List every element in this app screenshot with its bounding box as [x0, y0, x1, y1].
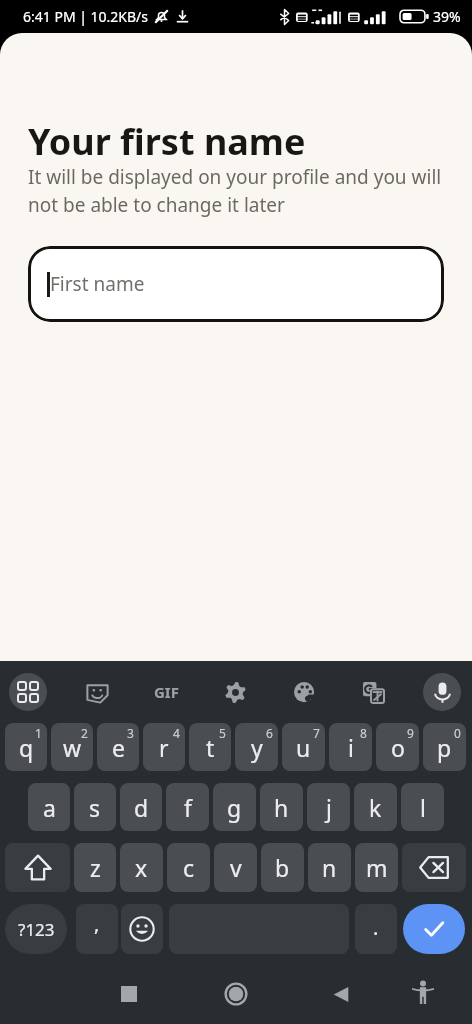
button[interactable]: Back — [318, 971, 364, 1017]
staticText: t — [206, 732, 215, 763]
staticText: u — [296, 732, 311, 763]
button[interactable]: Voice input — [418, 664, 466, 720]
staticText: l — [420, 792, 426, 823]
button[interactable]: w — [51, 723, 93, 771]
staticText: i — [348, 732, 354, 763]
staticText: ?123 — [18, 918, 55, 941]
staticText: 7 — [313, 725, 320, 741]
staticText: r — [159, 732, 169, 763]
button[interactable]: l — [401, 783, 444, 831]
button[interactable]: . — [355, 904, 397, 954]
button[interactable]: ?123 — [5, 904, 67, 954]
staticText: 3 — [127, 725, 134, 741]
button[interactable]: g — [213, 783, 256, 831]
staticText: j — [326, 792, 332, 823]
button[interactable]: d — [120, 783, 162, 831]
button[interactable]: Recent apps — [106, 971, 152, 1017]
staticText: 4 — [173, 725, 180, 741]
staticText: p — [437, 732, 452, 763]
button[interactable]: j — [307, 783, 350, 831]
staticText: h — [274, 792, 289, 823]
staticText: x — [135, 852, 148, 883]
button[interactable]: r — [143, 723, 185, 771]
button[interactable]: k — [354, 783, 397, 831]
staticText: d — [134, 792, 149, 823]
staticText: f — [184, 792, 192, 823]
button[interactable]: First name — [28, 246, 444, 322]
button[interactable]: i — [329, 723, 372, 771]
staticText: o — [391, 732, 405, 763]
button[interactable]: Translate — [349, 664, 397, 720]
staticText: It will be displayed on your profile and… — [28, 164, 444, 218]
button[interactable]: Settings — [211, 664, 259, 720]
staticText: a — [43, 792, 56, 823]
staticText: . — [373, 914, 379, 941]
staticText: y — [251, 732, 263, 763]
staticText: , — [94, 910, 100, 937]
button[interactable]: Keyboard layouts — [4, 664, 52, 720]
staticText: g — [227, 792, 242, 823]
staticText: e — [112, 732, 125, 763]
staticText: 6:41 PM | 10.2KB/s — [23, 7, 149, 26]
button[interactable]: h — [260, 783, 303, 831]
staticText: 0 — [454, 725, 461, 741]
button[interactable]: x — [120, 843, 163, 892]
staticText: q — [19, 732, 34, 763]
staticText: s — [89, 792, 101, 823]
staticText: 9 — [407, 725, 414, 741]
button[interactable]: c — [167, 843, 210, 892]
button[interactable]: v — [214, 843, 257, 892]
button[interactable]: s — [74, 783, 116, 831]
button[interactable]: q — [5, 723, 47, 771]
staticText: z — [90, 852, 101, 883]
button[interactable]: y — [235, 723, 278, 771]
button[interactable]: b — [261, 843, 304, 892]
staticText: First name — [50, 271, 145, 297]
staticText: m — [366, 852, 388, 883]
staticText: v — [230, 852, 242, 883]
button[interactable]: Home — [213, 971, 259, 1017]
staticText: 1 — [35, 725, 42, 741]
button[interactable]: Backspace — [402, 843, 466, 892]
button[interactable]: Themes — [280, 664, 328, 720]
button[interactable]: a — [28, 783, 70, 831]
staticText: GIF — [154, 682, 179, 702]
staticText: 39% — [433, 7, 461, 26]
button[interactable]: m — [355, 843, 398, 892]
staticText: c — [183, 852, 195, 883]
button[interactable]: Shift — [5, 843, 70, 892]
button[interactable]: p — [423, 723, 466, 771]
button[interactable]: u — [282, 723, 325, 771]
button[interactable]: Emoji — [121, 904, 163, 954]
staticText: 8 — [360, 725, 367, 741]
button[interactable]: t — [189, 723, 231, 771]
button[interactable]: e — [97, 723, 139, 771]
button[interactable]: , — [76, 904, 118, 954]
button[interactable]: o — [376, 723, 419, 771]
staticText: w — [63, 732, 82, 763]
staticText: 2 — [81, 725, 88, 741]
button[interactable]: n — [308, 843, 351, 892]
button[interactable]: z — [74, 843, 116, 892]
staticText: n — [322, 852, 337, 883]
staticText: 6 — [266, 725, 273, 741]
button[interactable]: GIF — [142, 664, 190, 720]
staticText: k — [369, 792, 382, 823]
button[interactable]: f — [166, 783, 209, 831]
button[interactable]: Done — [403, 904, 465, 954]
staticText: b — [275, 852, 290, 883]
button[interactable]: Accessibility — [400, 969, 446, 1015]
staticText: 5 — [219, 725, 226, 741]
staticText: Your first name — [28, 117, 306, 166]
button[interactable]: Stickers — [73, 664, 121, 720]
